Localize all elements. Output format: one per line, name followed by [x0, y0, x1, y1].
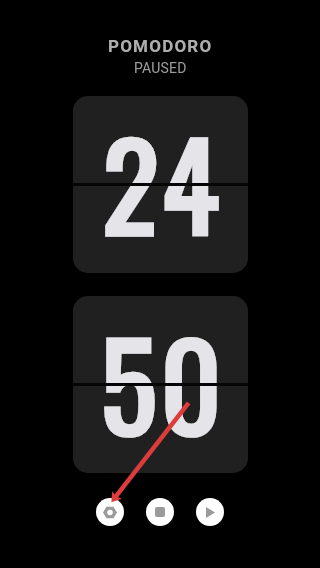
staticText: PAUSED [134, 60, 187, 76]
button[interactable]: 24 [73, 96, 248, 273]
button[interactable]: Settings [96, 498, 124, 526]
button[interactable]: 50 [73, 296, 248, 473]
button[interactable]: Play [196, 498, 224, 526]
staticText: 24 [102, 96, 223, 269]
staticText: 50 [100, 296, 226, 469]
button[interactable]: Stop [146, 498, 174, 526]
staticText: POMODORO [108, 36, 213, 56]
